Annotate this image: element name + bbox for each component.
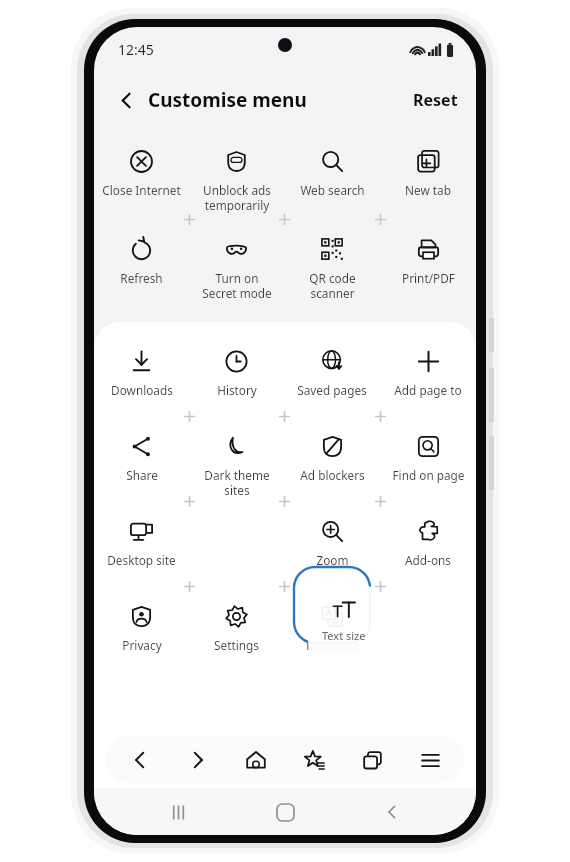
staticText: 12:45: [118, 40, 154, 59]
button[interactable]: Saved pages: [284, 338, 380, 423]
button[interactable]: Share: [94, 423, 189, 508]
button[interactable]: Ad blockers: [284, 423, 380, 508]
button[interactable]: Close Internet: [94, 138, 189, 226]
staticText: Add page to: [394, 382, 462, 398]
button[interactable]: Add page to: [380, 338, 476, 423]
button[interactable]: Privacy: [94, 593, 189, 678]
staticText: Reset: [413, 89, 458, 111]
staticText: Customise menu: [148, 87, 307, 113]
button[interactable]: Find on page: [380, 423, 476, 508]
button[interactable]: Home: [262, 789, 308, 835]
button[interactable]: Translator: [284, 593, 380, 678]
staticText: New tab: [405, 182, 451, 198]
staticText: Share: [126, 467, 158, 483]
button[interactable]: Home: [233, 737, 279, 783]
button[interactable]: Web search: [284, 138, 380, 226]
staticText: History: [217, 382, 257, 398]
staticText: Ad blockers: [300, 467, 365, 483]
button[interactable]: Back: [106, 80, 146, 120]
staticText: Text size: [322, 628, 366, 643]
button[interactable]: Reset: [405, 82, 466, 118]
staticText: Zoom: [316, 552, 349, 568]
staticText: Find on page: [392, 467, 465, 483]
button[interactable]: Refresh: [94, 226, 189, 314]
button[interactable]: Tabs: [349, 737, 395, 783]
button[interactable]: Recents: [155, 789, 201, 835]
button[interactable]: Desktop site: [94, 508, 189, 593]
button[interactable]: Downloads: [94, 338, 189, 423]
staticText: Refresh: [120, 270, 163, 286]
staticText: Turn on Secret mode: [202, 270, 272, 301]
staticText: QR code scanner: [309, 270, 356, 301]
button[interactable]: QR code scanner: [284, 226, 380, 314]
button[interactable]: Bookmarks: [291, 737, 337, 783]
staticText: Desktop site: [107, 552, 176, 568]
button[interactable]: Menu: [407, 737, 453, 783]
staticText: Saved pages: [297, 382, 367, 398]
staticText: Web search: [300, 182, 365, 198]
staticText: Downloads: [111, 382, 173, 398]
button[interactable]: History: [189, 338, 284, 423]
staticText: Add-ons: [405, 552, 451, 568]
staticText: Close Internet: [102, 182, 181, 198]
staticText: Privacy: [122, 637, 162, 653]
staticText: Unblock ads temporarily: [203, 182, 271, 213]
button[interactable]: Back: [117, 737, 163, 783]
button[interactable]: Add-ons: [380, 508, 476, 593]
button[interactable]: Forward: [175, 737, 221, 783]
button[interactable]: New tab: [380, 138, 476, 226]
staticText: Settings: [214, 637, 259, 653]
button[interactable]: Turn on Secret mode: [189, 226, 284, 314]
button[interactable]: Dark theme sites: [189, 423, 284, 508]
staticText: Translator: [304, 637, 361, 653]
button[interactable]: Back: [369, 789, 415, 835]
staticText: Print/PDF: [402, 270, 455, 286]
staticText: Dark theme sites: [204, 467, 270, 498]
button[interactable]: Settings: [189, 593, 284, 678]
button[interactable]: Print/PDF: [380, 226, 476, 314]
button[interactable]: Zoom: [284, 508, 380, 593]
button[interactable]: Text size: [308, 585, 380, 657]
button[interactable]: Unblock ads temporarily: [189, 138, 284, 226]
